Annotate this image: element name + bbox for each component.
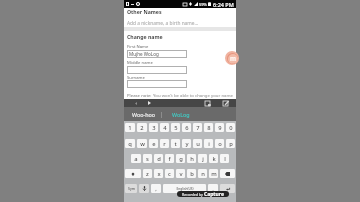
button[interactable] <box>127 66 187 74</box>
staticText: o <box>218 140 222 148</box>
staticText: 7 <box>196 124 200 132</box>
button[interactable]: t <box>171 139 180 148</box>
staticText: 1 <box>128 124 132 132</box>
staticText: Please note: <box>127 92 152 98</box>
button[interactable]: 3 <box>149 123 158 132</box>
button[interactable]: 2 <box>137 123 147 132</box>
button[interactable]: u <box>193 139 202 148</box>
staticText: 3 <box>152 124 156 132</box>
staticText: You won't be able to change your name <box>152 92 233 98</box>
button[interactable]: x <box>154 169 163 178</box>
staticText: 59% <box>199 2 207 7</box>
button[interactable]: m <box>209 169 218 178</box>
button[interactable]: Backspace <box>220 169 235 178</box>
button[interactable]: Woo-hoo <box>126 107 161 122</box>
staticText: l <box>224 155 226 163</box>
button[interactable]: Home <box>142 99 156 107</box>
staticText: , <box>155 185 157 193</box>
button[interactable]: 8 <box>204 123 213 132</box>
button[interactable]: n <box>198 169 207 178</box>
staticText: 6:24 PM <box>213 1 234 8</box>
button[interactable]: a <box>131 154 141 163</box>
button[interactable]: 1 <box>125 123 135 132</box>
button[interactable]: w <box>137 139 147 148</box>
button[interactable]: s <box>143 154 152 163</box>
button[interactable]: y <box>182 139 191 148</box>
button[interactable] <box>127 80 187 88</box>
staticText: m <box>211 170 217 178</box>
button[interactable]: c <box>165 169 174 178</box>
button[interactable]: Mujhe WoLog <box>127 50 187 58</box>
button[interactable]: Recent apps <box>202 99 212 107</box>
button[interactable]: z <box>143 169 152 178</box>
button[interactable]: v <box>176 169 185 178</box>
staticText: 0 <box>229 124 233 132</box>
staticText: k <box>212 155 216 163</box>
button[interactable]: Screenshot <box>220 99 230 107</box>
staticText: Add a nickname, a birth name... <box>127 20 199 27</box>
button[interactable]: 5 <box>171 123 180 132</box>
staticText: w <box>140 140 145 148</box>
staticText: m <box>230 54 237 62</box>
button[interactable]: i <box>204 139 213 148</box>
staticText: English(US) <box>176 187 194 191</box>
button[interactable]: Back <box>129 99 143 107</box>
staticText: Sym <box>128 186 135 191</box>
staticText: . <box>212 185 214 193</box>
staticText: t <box>174 140 177 148</box>
staticText: 5 <box>174 124 178 132</box>
button[interactable]: 0 <box>226 123 235 132</box>
button[interactable]: Sym <box>125 184 137 193</box>
staticText: s <box>146 155 149 163</box>
button[interactable]: WoLog <box>163 107 198 122</box>
staticText: Recorded by <box>182 192 203 197</box>
staticText: Woo-hoo <box>132 111 156 118</box>
button[interactable]: g <box>176 154 185 163</box>
button[interactable]: d <box>154 154 163 163</box>
button[interactable]: Shift <box>125 169 141 178</box>
button[interactable]: k <box>209 154 218 163</box>
staticText: n <box>201 170 205 178</box>
staticText: h <box>190 155 194 163</box>
button[interactable]: 7 <box>193 123 202 132</box>
staticText: f <box>168 155 171 163</box>
staticText: p <box>229 140 233 148</box>
button[interactable]: j <box>198 154 207 163</box>
staticText: z <box>146 170 149 178</box>
button[interactable]: q <box>125 139 135 148</box>
button[interactable]: 4 <box>160 123 169 132</box>
button[interactable]: r <box>160 139 169 148</box>
button[interactable]: l <box>220 154 229 163</box>
staticText: v <box>179 170 183 178</box>
button[interactable]: Enter <box>220 184 235 193</box>
staticText: j <box>202 155 204 163</box>
button[interactable]: , <box>151 184 161 193</box>
staticText: e <box>152 140 156 148</box>
staticText: b <box>190 170 194 178</box>
button[interactable]: h <box>187 154 196 163</box>
staticText: 4 <box>163 124 167 132</box>
staticText: Mujhe WoLog <box>129 51 159 57</box>
button[interactable]: English(US) <box>163 184 206 193</box>
button[interactable]: Voice input <box>139 184 149 193</box>
staticText: 2 <box>140 124 144 132</box>
staticText: on <box>232 62 236 64</box>
staticText: WoLog <box>172 111 190 118</box>
staticText: u <box>196 140 200 148</box>
button[interactable]: 9 <box>215 123 224 132</box>
button[interactable]: o <box>215 139 224 148</box>
staticText: 8 <box>207 124 211 132</box>
staticText: Other Names <box>127 8 162 15</box>
button[interactable]: . <box>208 184 218 193</box>
button[interactable]: f <box>165 154 174 163</box>
staticText: r <box>163 140 166 148</box>
button[interactable]: b <box>187 169 196 178</box>
button[interactable]: p <box>226 139 235 148</box>
staticText: d <box>157 155 161 163</box>
staticText: First Name <box>127 44 149 50</box>
button[interactable]: 6 <box>182 123 191 132</box>
button[interactable]: Other Names <box>124 8 236 27</box>
button[interactable]: e <box>149 139 158 148</box>
staticText: y <box>185 140 189 148</box>
staticText: i <box>208 140 210 148</box>
